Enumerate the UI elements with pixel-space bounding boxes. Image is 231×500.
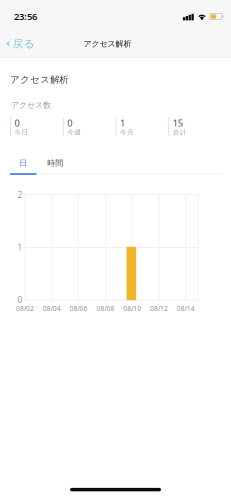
staticText: 08/04 bbox=[43, 304, 61, 313]
staticText: 23:56 bbox=[14, 10, 37, 23]
button[interactable]: 日 bbox=[0, 0, 231, 500]
staticText: 0 bbox=[67, 117, 72, 129]
staticText: 08/10 bbox=[123, 304, 141, 313]
staticText: アクセス数 bbox=[11, 100, 51, 110]
staticText: 15 bbox=[173, 117, 183, 129]
staticText: アクセス解析 bbox=[10, 74, 68, 85]
staticText: 2 bbox=[17, 190, 22, 200]
staticText: アクセス解析 bbox=[83, 39, 131, 49]
staticText: 08/08 bbox=[96, 304, 114, 313]
staticText: 今日 bbox=[14, 128, 28, 136]
staticText: 1 bbox=[17, 242, 22, 253]
staticText: 0 bbox=[14, 117, 19, 129]
button[interactable]: 戻る bbox=[0, 0, 231, 500]
staticText: 日 bbox=[19, 158, 27, 168]
staticText: 08/14 bbox=[177, 304, 195, 313]
staticText: 合計 bbox=[173, 128, 187, 136]
staticText: 今週 bbox=[67, 128, 81, 136]
staticText: 08/02 bbox=[16, 304, 34, 313]
staticText: 1 bbox=[120, 117, 125, 129]
staticText: 時間 bbox=[47, 158, 63, 168]
staticText: 戻る bbox=[13, 37, 35, 50]
staticText: 0 bbox=[17, 295, 22, 305]
staticText: 今月 bbox=[120, 128, 134, 136]
button[interactable]: 時間 bbox=[0, 0, 231, 500]
staticText: 08/12 bbox=[150, 304, 168, 313]
staticText: 08/06 bbox=[70, 304, 88, 313]
